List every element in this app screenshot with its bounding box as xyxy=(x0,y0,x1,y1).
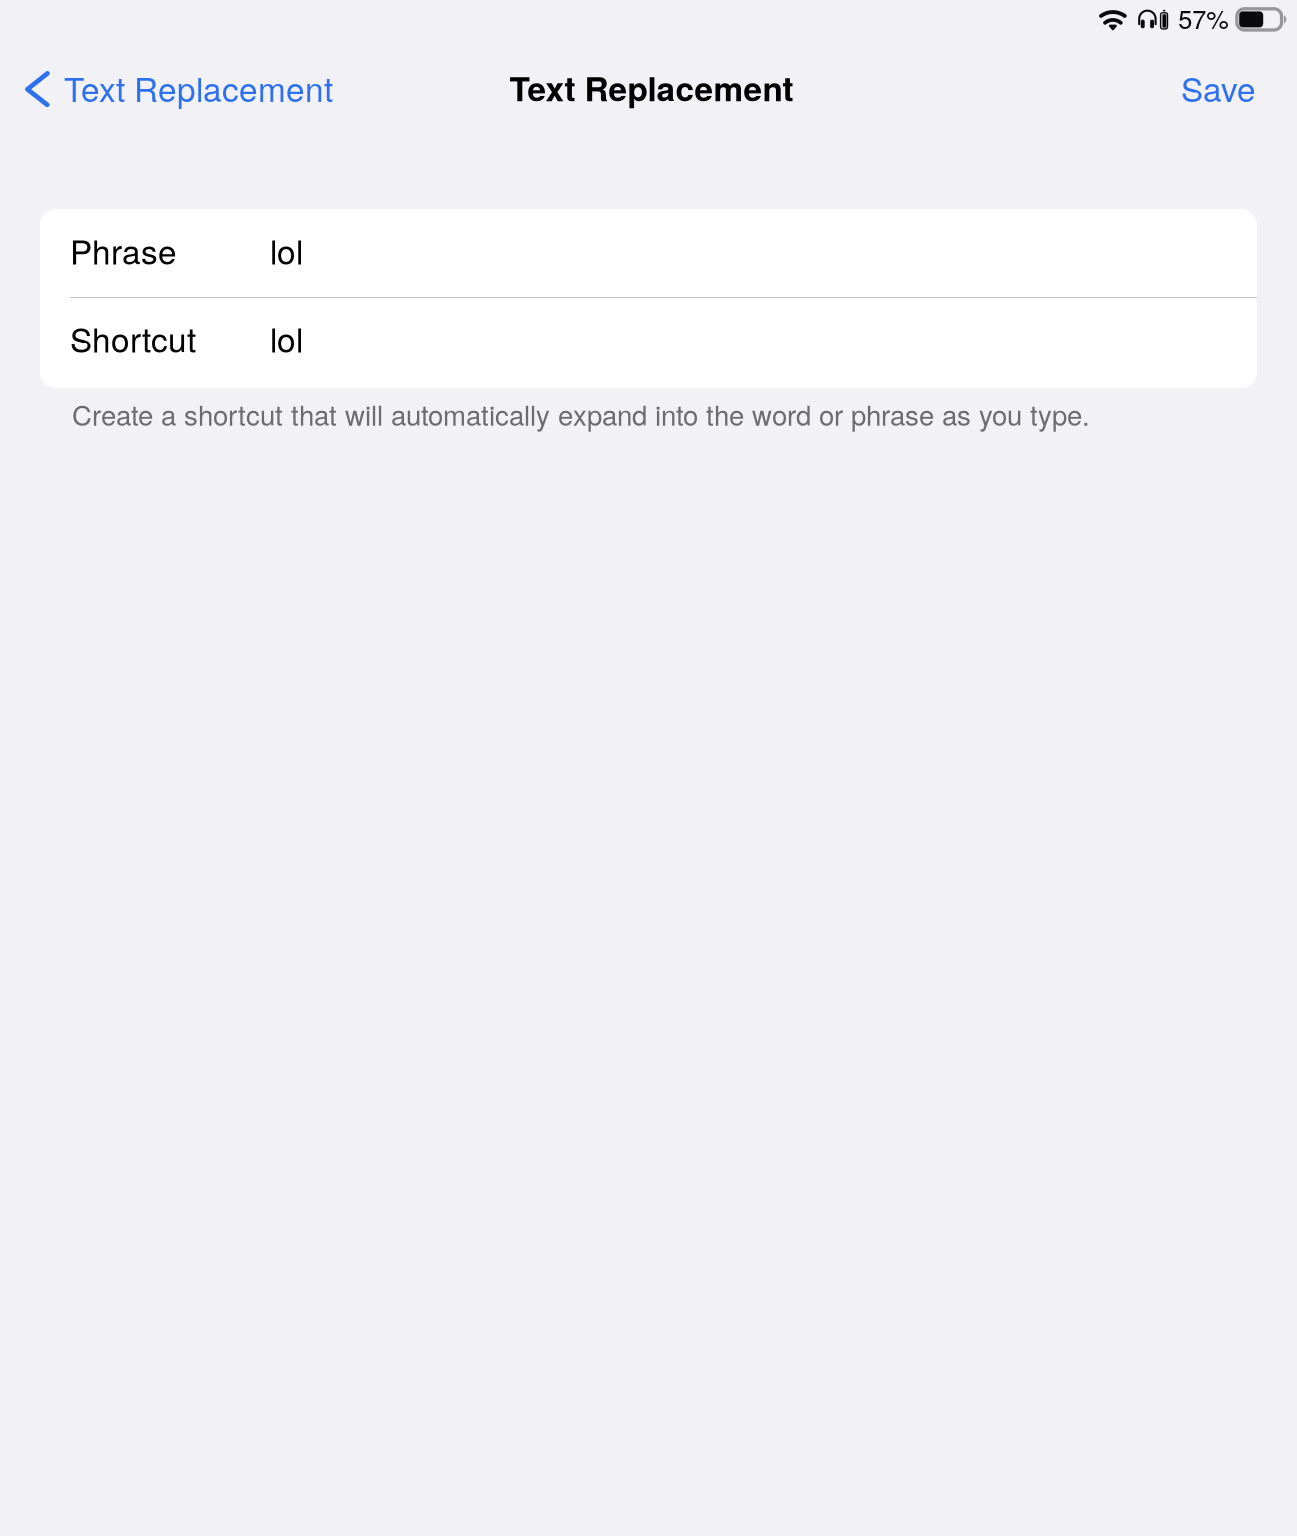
staticText: 57% xyxy=(1178,0,1229,36)
staticText: Text Replacement xyxy=(64,64,333,111)
button[interactable]: Save xyxy=(1181,40,1297,119)
staticText: lol xyxy=(270,226,303,274)
button[interactable]: Phrase xyxy=(40,209,1257,297)
staticText: lol xyxy=(270,314,303,362)
staticText: Shortcut xyxy=(70,314,196,362)
button[interactable]: Shortcut xyxy=(40,298,1257,388)
staticText: Save xyxy=(1181,64,1256,111)
staticText: Phrase xyxy=(70,226,177,274)
staticText: Text Replacement xyxy=(509,64,793,111)
button[interactable]: Text Replacement xyxy=(0,40,333,119)
staticText: Create a shortcut that will automaticall… xyxy=(72,394,1090,433)
